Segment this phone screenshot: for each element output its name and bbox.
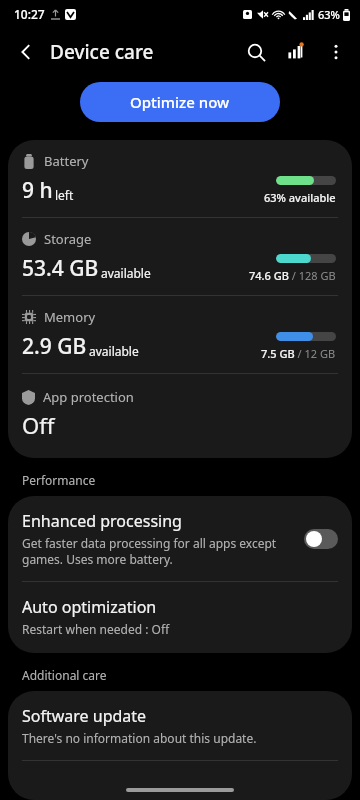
staticText: 2.9 GB: [22, 332, 87, 361]
staticText: available: [89, 343, 139, 359]
staticText: Performance: [22, 472, 96, 488]
staticText: 63%: [318, 7, 340, 22]
button[interactable]: Enhanced processing: [8, 496, 352, 581]
staticText: Additional care: [22, 667, 107, 683]
staticText: Device care: [50, 39, 154, 65]
button[interactable]: Back: [6, 32, 46, 72]
staticText: 53.4 GB: [22, 254, 99, 283]
staticText: Optimize now: [130, 92, 230, 112]
staticText: 7.5 GB / 12 GB: [261, 346, 336, 361]
button[interactable]: More options: [316, 32, 356, 72]
staticText: Software update: [22, 705, 147, 727]
button[interactable]: App protection: [8, 374, 352, 458]
button[interactable]: Software update: [8, 691, 352, 760]
staticText: Enhanced processing: [22, 510, 182, 532]
button[interactable]: Usage statistics: [276, 32, 316, 72]
button[interactable]: Memory: [8, 296, 352, 373]
staticText: Get faster data processing for all apps …: [22, 535, 294, 567]
staticText: Auto optimization: [22, 596, 157, 618]
staticText: Memory: [44, 308, 96, 326]
staticText: Storage: [44, 230, 92, 248]
staticText: Battery: [44, 152, 89, 170]
staticText: 9 h: [22, 176, 53, 205]
staticText: left: [55, 187, 74, 203]
staticText: 74.6 GB / 128 GB: [249, 268, 336, 283]
staticText: There's no information about this update…: [22, 730, 257, 746]
button[interactable]: Enhanced processing toggle: [304, 529, 338, 549]
button[interactable]: Optimize now: [80, 82, 280, 122]
staticText: Restart when needed : Off: [22, 621, 170, 637]
staticText: available: [101, 265, 151, 281]
button[interactable]: Battery: [8, 140, 352, 217]
button[interactable]: Auto optimization: [8, 582, 352, 653]
button[interactable]: Search: [236, 32, 276, 72]
staticText: 63% available: [264, 190, 336, 205]
staticText: App protection: [43, 388, 134, 406]
button[interactable]: Storage: [8, 218, 352, 295]
staticText: 10:27: [14, 6, 45, 22]
staticText: Off: [22, 410, 55, 440]
